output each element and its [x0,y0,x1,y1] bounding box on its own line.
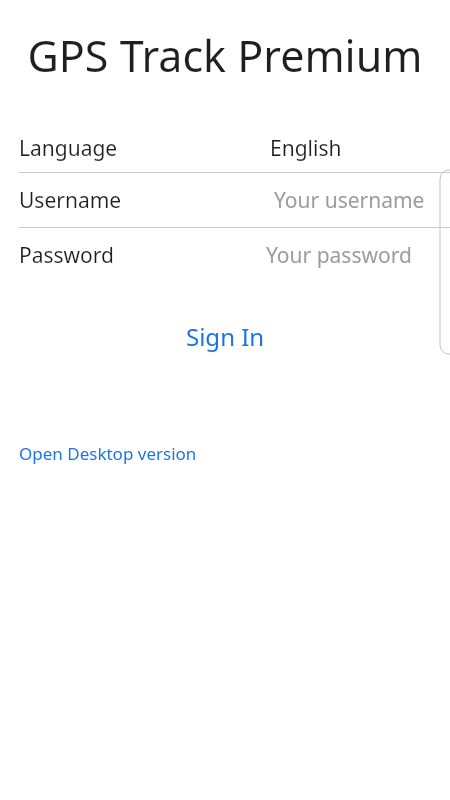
staticText: Language [19,134,118,163]
button[interactable]: Username [0,173,450,227]
staticText: Sign In [186,320,265,353]
staticText: Password [19,241,114,270]
staticText: Your password [266,241,412,270]
staticText: Username [19,186,122,215]
button[interactable]: Open Desktop version [19,442,197,465]
button[interactable]: Language [0,124,450,172]
button[interactable]: Password [0,228,450,282]
staticText: Your username [274,186,425,215]
staticText: GPS Track Premium [0,26,450,85]
staticText: English [270,134,342,163]
button[interactable]: Sign In [0,314,450,358]
staticText: Open Desktop version [19,442,197,465]
